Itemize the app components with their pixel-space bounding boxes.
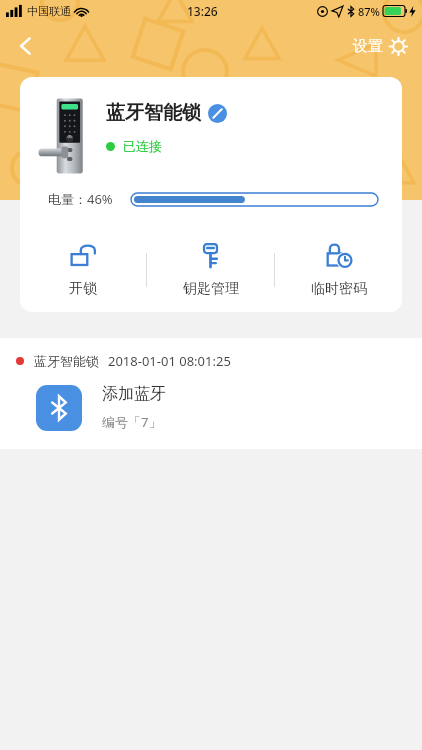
staticText: 添加蓝牙 [102, 384, 166, 404]
button[interactable]: 设置 [349, 31, 412, 62]
button[interactable]: Back [4, 24, 48, 68]
staticText: 临时密码 [311, 280, 367, 298]
staticText: 2018-01-01 08:01:25 [108, 352, 231, 370]
staticText: 钥匙管理 [183, 280, 239, 298]
staticText: 电量：46% [48, 190, 113, 208]
staticText: 中国联通 [27, 4, 71, 18]
staticText: 开锁 [69, 280, 97, 298]
staticText: 蓝牙智能锁 [34, 353, 99, 369]
button[interactable]: Rename [208, 104, 227, 123]
button[interactable]: 临时密码 [275, 234, 402, 306]
staticText: 已连接 [123, 138, 162, 154]
button[interactable]: 添加蓝牙 [0, 370, 422, 449]
staticText: 87% [358, 4, 380, 19]
staticText: 13:26 [187, 3, 218, 19]
staticText: 设置 [353, 37, 383, 56]
staticText: 蓝牙智能锁 [106, 101, 201, 125]
button[interactable]: 钥匙管理 [147, 234, 274, 306]
staticText: 编号「7」 [102, 413, 162, 431]
button[interactable]: 开锁 [20, 234, 146, 306]
